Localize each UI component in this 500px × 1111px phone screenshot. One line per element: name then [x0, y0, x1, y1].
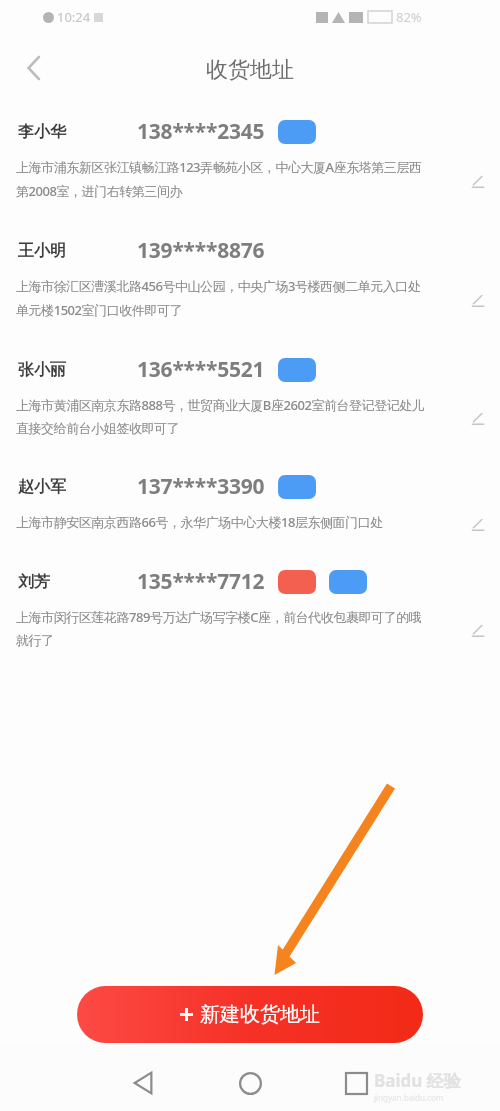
staticText: 直接交给前台小姐签收即可了 [16, 420, 180, 436]
button[interactable]: Edit [462, 165, 492, 195]
staticText: 82% [396, 8, 422, 26]
staticText: 136****5521 [137, 355, 265, 384]
staticText: 张小丽 [18, 360, 66, 380]
staticText: 李小华 [18, 122, 66, 142]
staticText: Baidu 经验 [374, 1069, 461, 1092]
button[interactable]: Edit [462, 284, 492, 314]
button[interactable]: 新建收货地址 [77, 986, 423, 1043]
button[interactable]: Back [119, 1059, 167, 1107]
staticText: 赵小军 [18, 477, 66, 497]
staticText: 单元楼1502室门口收件即可了 [16, 301, 182, 319]
staticText: 收货地址 [206, 56, 294, 84]
button[interactable]: 李小华 [0, 106, 500, 225]
staticText: 139****8876 [137, 236, 265, 265]
staticText: 上海市闵行区莲花路789号万达广场写字楼C座，前台代收包裹即可了的哦 [16, 608, 422, 626]
button[interactable]: Home [226, 1059, 274, 1107]
staticText: 王小明 [18, 241, 66, 261]
staticText: 就行了 [16, 632, 54, 648]
staticText: 上海市静安区南京西路66号，永华广场中心大楼18层东侧面门口处 [16, 513, 383, 531]
staticText: 135****7712 [137, 567, 265, 596]
button[interactable]: Edit [462, 402, 492, 432]
button[interactable]: 张小丽 [0, 344, 500, 461]
button[interactable]: 王小明 [0, 225, 500, 344]
staticText: 上海市浦东新区张江镇畅江路123弄畅苑小区，中心大厦A座东塔第三层西 [16, 158, 422, 176]
button[interactable]: Edit [462, 614, 492, 644]
staticText: 上海市黄浦区南京东路888号，世贸商业大厦B座2602室前台登记登记处儿 [16, 396, 425, 414]
staticText: 137****3390 [137, 472, 265, 501]
button[interactable]: 刘芳 [0, 556, 500, 673]
staticText: 10:24 [57, 8, 91, 26]
staticText: 第2008室，进门右转第三间办 [16, 182, 182, 200]
button[interactable]: Recents [332, 1059, 380, 1107]
staticText: 刘芳 [18, 572, 50, 592]
button[interactable]: 赵小军 [0, 461, 500, 556]
staticText: 上海市徐汇区漕溪北路456号中山公园，中央广场3号楼西侧二单元入口处 [16, 277, 421, 295]
button[interactable]: Edit [462, 508, 492, 538]
button[interactable]: Back [13, 48, 53, 88]
staticText: 新建收货地址 [200, 1002, 320, 1027]
staticText: jingyan.baidu.com [374, 1092, 444, 1103]
staticText: 138****2345 [137, 117, 265, 146]
